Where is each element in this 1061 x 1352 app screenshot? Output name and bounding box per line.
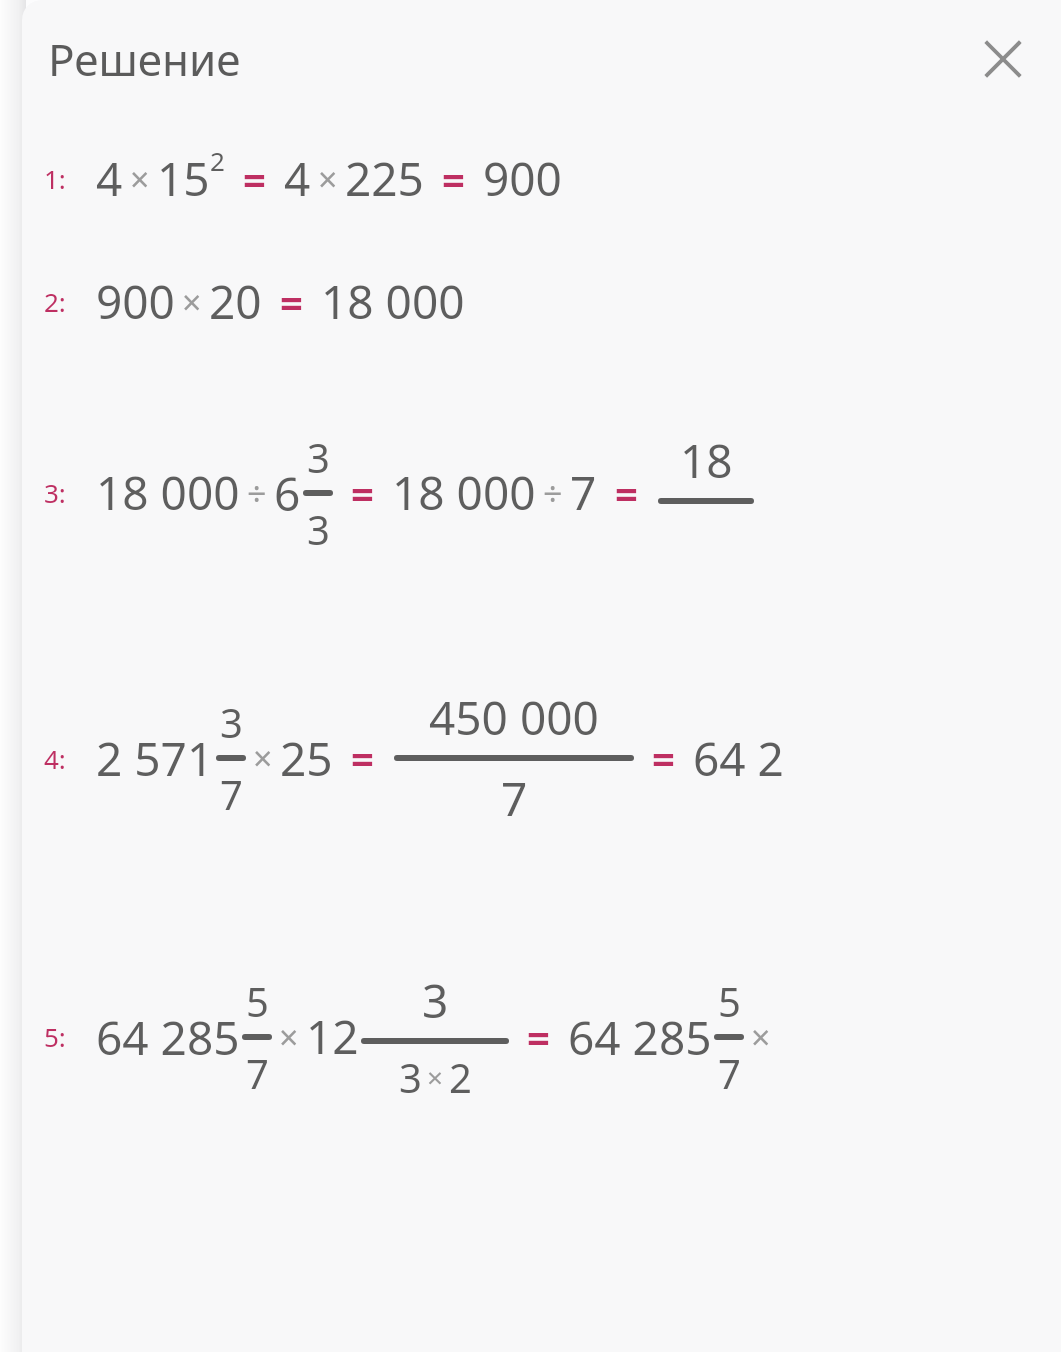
staticText: = bbox=[351, 466, 374, 520]
staticText: = bbox=[280, 275, 303, 329]
staticText: 7 bbox=[501, 767, 528, 830]
staticText: 64 285 bbox=[568, 1006, 712, 1069]
staticText: = bbox=[527, 1010, 550, 1064]
staticText: 18 000 bbox=[321, 270, 465, 333]
staticText: = bbox=[351, 731, 374, 785]
staticText: 3 bbox=[422, 969, 449, 1032]
staticText: 5 bbox=[718, 974, 741, 1028]
staticText: × bbox=[182, 279, 202, 325]
staticText: × bbox=[318, 156, 338, 202]
staticText: 64 2 bbox=[693, 727, 784, 790]
staticText: × bbox=[279, 1014, 299, 1060]
staticText: 3 bbox=[399, 1050, 422, 1104]
staticText: 7 bbox=[718, 1046, 741, 1100]
staticText: ÷ bbox=[247, 470, 267, 516]
staticText: × bbox=[427, 1058, 444, 1096]
staticText: = bbox=[615, 466, 638, 520]
staticText: = bbox=[442, 152, 465, 206]
staticText: 3 bbox=[220, 695, 243, 749]
staticText: 7 bbox=[246, 1046, 269, 1100]
staticText: 2 571 bbox=[96, 727, 214, 790]
staticText: × bbox=[253, 735, 273, 781]
staticText: 7 bbox=[220, 767, 243, 821]
staticText: 2 bbox=[449, 1050, 472, 1104]
button[interactable]: Close bbox=[971, 27, 1035, 91]
staticText: = bbox=[652, 731, 675, 785]
staticText: 7 bbox=[570, 461, 597, 524]
staticText: 15 bbox=[157, 147, 210, 210]
staticText: 3: bbox=[44, 475, 66, 510]
staticText: 4: bbox=[44, 741, 66, 776]
staticText: 25 bbox=[280, 727, 333, 790]
staticText: 900 bbox=[96, 270, 175, 333]
staticText: 3 bbox=[307, 430, 330, 484]
staticText: 1: bbox=[44, 161, 66, 196]
staticText: 64 285 bbox=[96, 1006, 240, 1069]
staticText: 12 bbox=[306, 1005, 359, 1068]
staticText: 4 bbox=[284, 147, 311, 210]
staticText: 4 bbox=[96, 147, 123, 210]
staticText: = bbox=[243, 152, 266, 206]
staticText: 18 000 bbox=[96, 461, 240, 524]
staticText: 2 bbox=[210, 143, 225, 178]
staticText: 450 000 bbox=[429, 686, 599, 749]
staticText: 3 bbox=[307, 502, 330, 556]
staticText: 225 bbox=[345, 147, 424, 210]
staticText: ÷ bbox=[543, 470, 563, 516]
staticText: 18 bbox=[680, 429, 733, 492]
staticText: Решение bbox=[48, 29, 241, 89]
staticText: 900 bbox=[483, 147, 562, 210]
staticText: × bbox=[751, 1014, 771, 1060]
staticText: 5 bbox=[246, 974, 269, 1028]
staticText: 6 bbox=[274, 462, 301, 525]
staticText: × bbox=[130, 156, 150, 202]
staticText: 5: bbox=[44, 1019, 66, 1054]
staticText: 2: bbox=[44, 284, 66, 319]
staticText: 20 bbox=[209, 270, 262, 333]
staticText: 18 000 bbox=[392, 461, 536, 524]
